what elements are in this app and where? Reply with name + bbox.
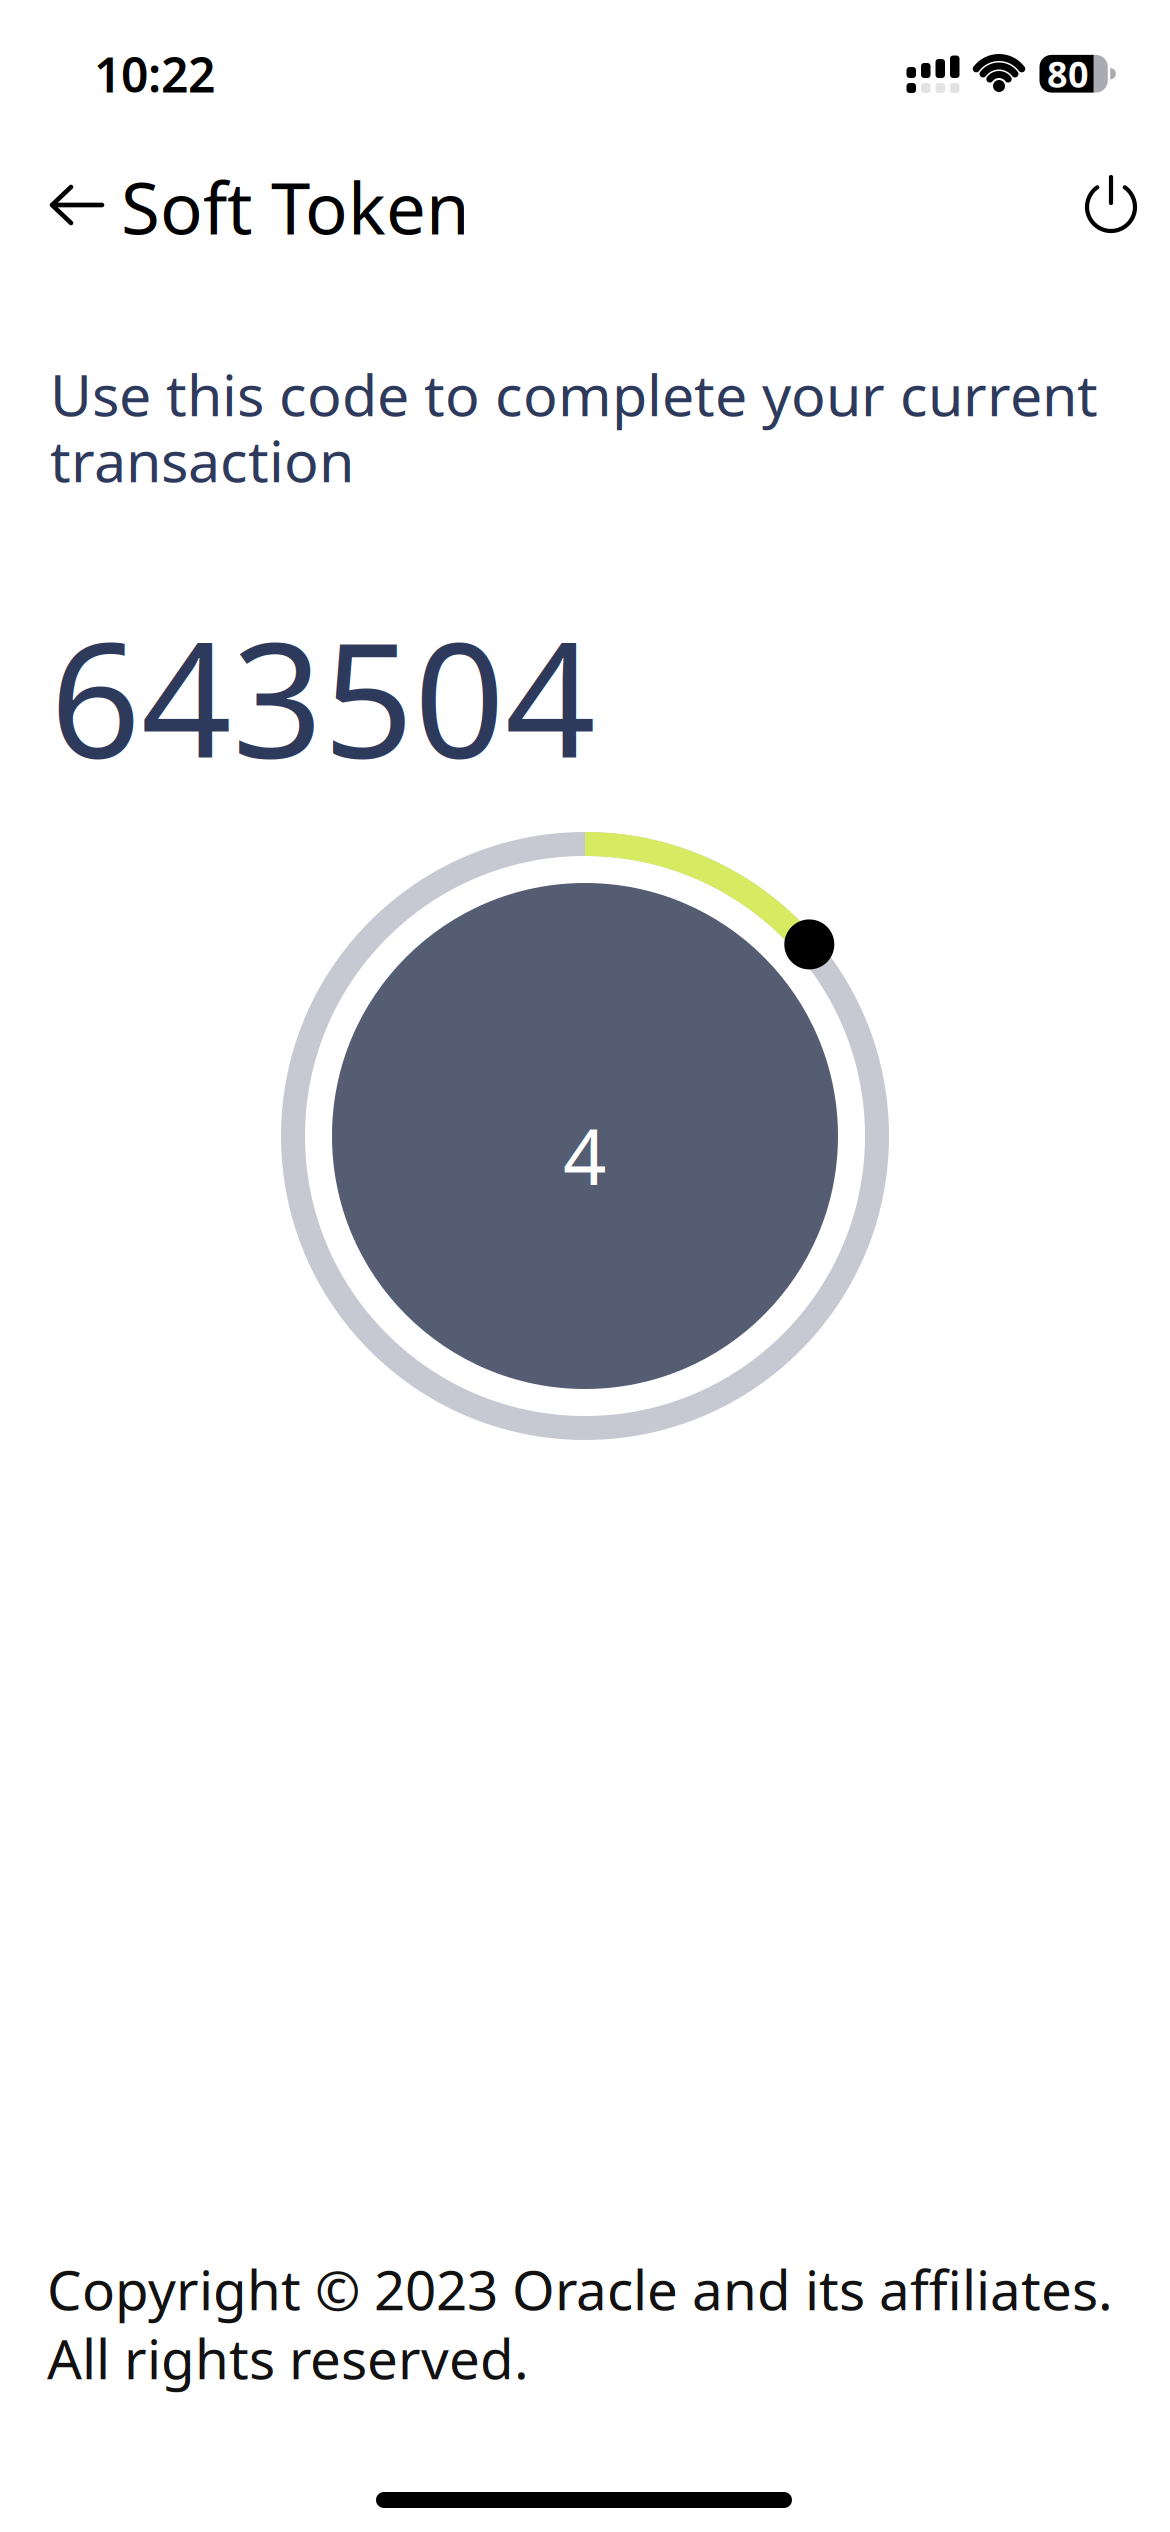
button[interactable]: Back [45,180,109,230]
staticText: transaction [50,422,354,498]
staticText: Soft Token [121,160,470,254]
staticText: 10:22 [94,42,215,106]
staticText: 80 [1047,50,1089,98]
button[interactable]: Sign out [1079,173,1143,237]
staticText: 4 [563,1104,606,1205]
staticText: Copyright © 2023 Oracle and its affiliat… [47,2253,1113,2325]
staticText: Use this code to complete your current [50,356,1098,432]
staticText: 643504 [50,591,596,801]
staticText: All rights reserved. [47,2322,529,2394]
